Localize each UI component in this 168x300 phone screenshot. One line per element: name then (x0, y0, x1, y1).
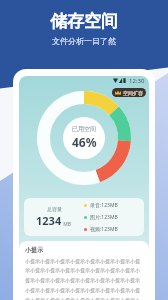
button[interactable]: 空间扩容 (112, 88, 146, 97)
staticText: 储存空间 (50, 11, 118, 32)
staticText: MB (62, 221, 72, 228)
staticText: 46% (72, 134, 97, 150)
staticText: 1234 (36, 213, 62, 228)
staticText: 12:30 (129, 77, 145, 85)
staticText: 文件分析一目了然 (52, 36, 116, 46)
staticText: 总容量 (47, 206, 62, 212)
staticText: 录音:123MB (90, 202, 118, 209)
staticText: 小提示 (25, 246, 43, 254)
staticText: 空间扩容 (123, 90, 143, 96)
staticText: 已用空间 (72, 125, 96, 133)
staticText: 图片:123MB (90, 214, 118, 221)
staticText: 视频:123MB (90, 226, 118, 233)
staticText: 小提示小提示小提示小提示小提示小提示小提示小提示小提示小提示小提示小提示小提示小… (25, 258, 144, 300)
